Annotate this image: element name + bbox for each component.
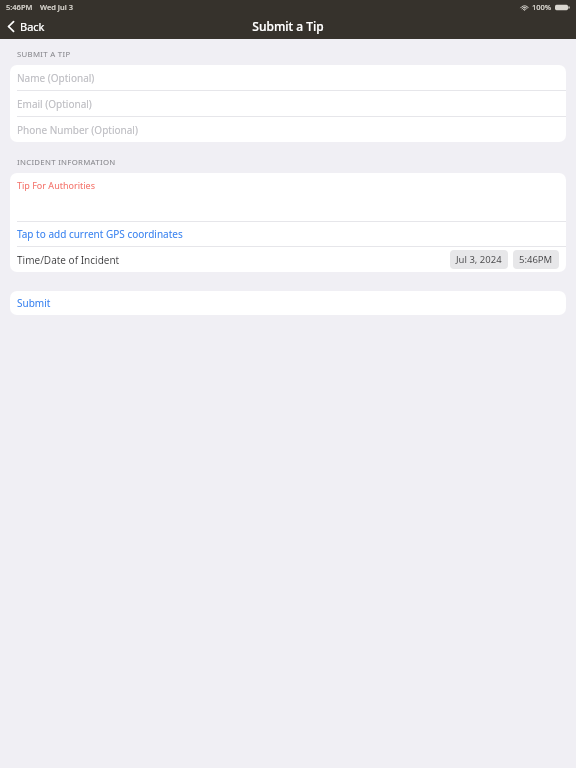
staticText: 5:46PM (6, 2, 33, 12)
staticText: Name (Optional) (17, 71, 95, 85)
staticText: Email (Optional) (17, 97, 92, 111)
button[interactable]: Back (0, 15, 55, 38)
staticText: Jul 3, 2024 (456, 253, 502, 266)
button[interactable]: Time/Date of Incident (10, 247, 566, 272)
button[interactable]: Tap to add current GPS coordinates (10, 222, 566, 246)
button[interactable]: 5:46PM (513, 250, 559, 269)
staticText: Back (20, 19, 45, 34)
button[interactable]: Email (Optional) (10, 91, 566, 117)
button[interactable]: Name (Optional) (10, 65, 566, 91)
staticText: 5:46PM (519, 253, 553, 266)
staticText: Submit (17, 296, 51, 310)
button[interactable]: Submit (10, 291, 566, 315)
staticText: Submit a Tip (252, 18, 324, 34)
staticText: 100% (532, 2, 552, 12)
staticText: Tip For Authorities (17, 179, 95, 191)
staticText: Tap to add current GPS coordinates (17, 227, 183, 241)
button[interactable]: Phone Number (Optional) (10, 117, 566, 142)
button[interactable]: Jul 3, 2024 (450, 250, 508, 269)
staticText: Wed Jul 3 (40, 2, 73, 12)
staticText: SUBMIT A TIP (17, 49, 71, 60)
staticText: Time/Date of Incident (17, 253, 120, 267)
button[interactable]: Tip For Authorities (10, 173, 566, 221)
staticText: INCIDENT INFORMATION (17, 157, 116, 168)
staticText: Phone Number (Optional) (17, 123, 138, 137)
